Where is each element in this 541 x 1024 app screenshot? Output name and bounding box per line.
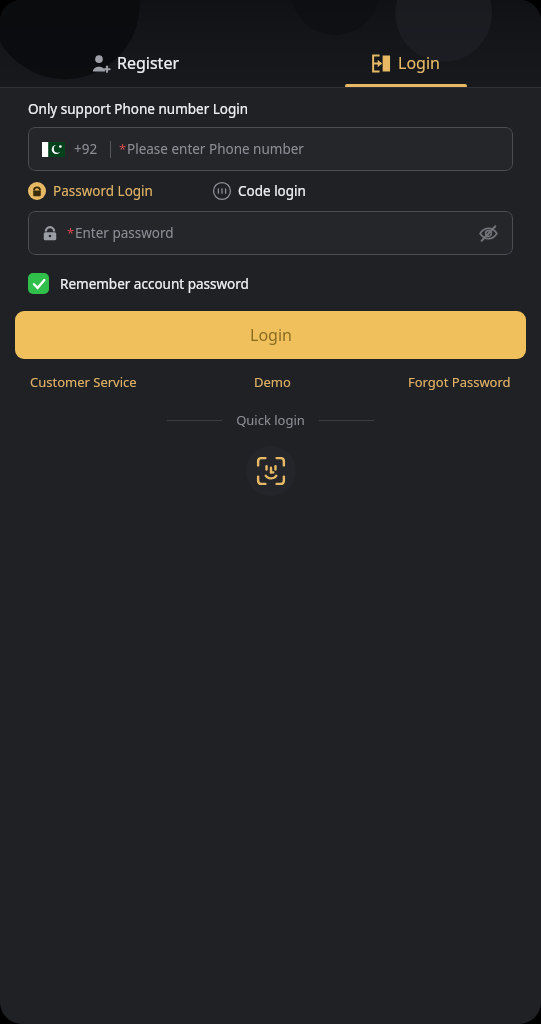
button[interactable]: Login: [270, 52, 541, 88]
staticText: Enter password: [75, 224, 174, 242]
staticText: Login: [250, 324, 292, 346]
button[interactable]: Show password: [475, 220, 501, 246]
staticText: Only support Phone number Login: [28, 100, 249, 118]
button[interactable]: Demo: [248, 369, 297, 395]
staticText: +92: [74, 140, 98, 158]
staticText: *: [67, 224, 75, 242]
button[interactable]: Remember account password: [28, 273, 249, 294]
staticText: Code login: [238, 182, 306, 200]
staticText: Demo: [254, 373, 291, 391]
button[interactable]: Face ID login: [246, 446, 296, 496]
button[interactable]: Code login: [213, 182, 306, 200]
staticText: Please enter Phone number: [127, 140, 304, 158]
staticText: Forgot Password: [408, 373, 511, 391]
staticText: Password Login: [53, 182, 153, 200]
button[interactable]: Register: [0, 52, 270, 88]
button[interactable]: Forgot Password: [402, 369, 517, 395]
button[interactable]: Password Login: [28, 182, 153, 200]
staticText: Quick login: [236, 411, 305, 429]
staticText: Customer Service: [30, 373, 137, 391]
button[interactable]: Customer Service: [24, 369, 143, 395]
button[interactable]: *: [28, 211, 513, 255]
staticText: *: [119, 140, 127, 158]
staticText: Remember account password: [60, 275, 249, 293]
staticText: Login: [398, 52, 440, 74]
staticText: Register: [117, 52, 180, 74]
button[interactable]: +92: [28, 127, 513, 171]
button[interactable]: Login: [15, 311, 526, 359]
